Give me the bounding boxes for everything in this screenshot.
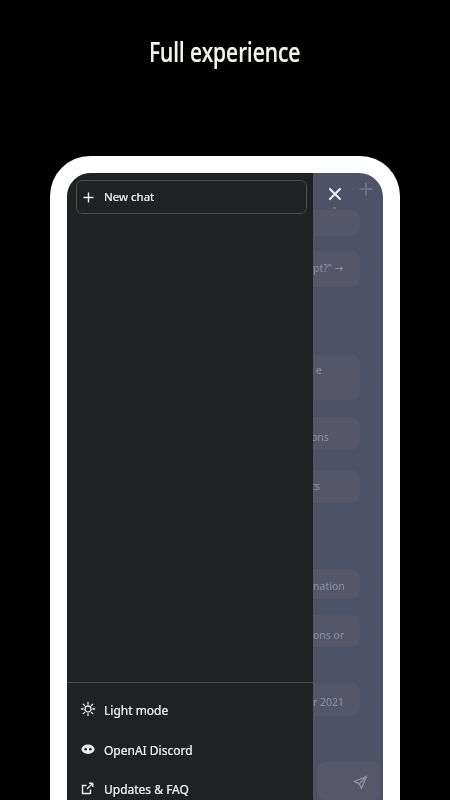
button[interactable]	[67, 768, 313, 800]
button[interactable]	[67, 729, 313, 769]
button[interactable]	[67, 689, 313, 729]
staticText: New chat	[104, 189, 155, 205]
button[interactable]: New chat	[76, 180, 307, 214]
staticText: e	[316, 363, 322, 377]
staticText: r 2021	[313, 695, 345, 709]
staticText: ons or	[313, 628, 345, 642]
button[interactable]	[359, 182, 373, 196]
staticText: ons	[311, 430, 329, 444]
button[interactable]	[317, 762, 380, 800]
staticText: Updates & FAQ	[104, 781, 189, 797]
staticText: Full experience	[149, 34, 301, 71]
button[interactable]	[326, 185, 344, 203]
staticText: nation	[313, 579, 345, 593]
staticText: ts	[311, 479, 320, 493]
button[interactable]	[353, 775, 368, 790]
staticText: OpenAI Discord	[104, 742, 193, 758]
staticText: pt?" →	[313, 261, 344, 275]
staticText: Light mode	[104, 702, 169, 718]
